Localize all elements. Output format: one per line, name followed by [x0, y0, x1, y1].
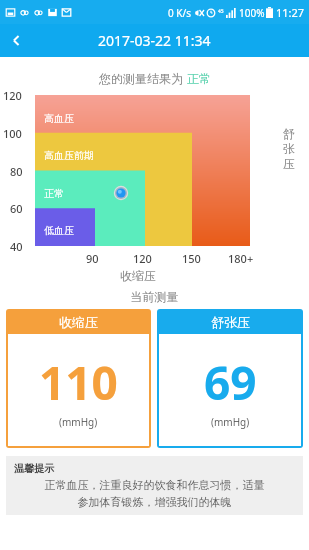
staticText: (mmHg) [59, 415, 98, 429]
staticText: 正常血压，注重良好的饮食和作息习惯，适量 参加体育锻炼，增强我们的体魄 [14, 478, 295, 509]
staticText: 90 [86, 251, 99, 266]
staticText: 2017-03-22 11:34 [98, 31, 211, 50]
staticText: 高血压前期 [44, 149, 94, 162]
button[interactable]: Back [0, 24, 33, 57]
staticText: 60 [10, 201, 23, 216]
staticText: 当前测量 [0, 289, 309, 304]
staticText: 张 [283, 141, 295, 156]
staticText: 正常 [44, 187, 64, 200]
staticText: 舒 [283, 126, 295, 141]
staticText: 0 K/s [168, 6, 192, 20]
staticText: 正常 [187, 71, 211, 86]
staticText: 100 [3, 126, 22, 141]
staticText: 120 [3, 88, 22, 103]
button[interactable]: 收缩压 [6, 309, 151, 448]
staticText: 舒张压 [211, 314, 250, 330]
staticText: 低血压 [44, 224, 74, 237]
staticText: 您的测量结果为 [99, 70, 187, 86]
staticText: 温馨提示 [14, 462, 54, 475]
staticText: ⁴⁵ [218, 7, 224, 18]
staticText: 收缩压 [120, 268, 156, 283]
staticText: 100% [239, 6, 265, 20]
staticText: 69 [204, 351, 257, 414]
staticText: (mmHg) [211, 415, 250, 429]
staticText: 110 [39, 351, 118, 414]
staticText: 120 [133, 251, 152, 266]
staticText: 80 [10, 164, 23, 179]
staticText: 高血压 [44, 112, 74, 125]
staticText: 收缩压 [59, 314, 98, 330]
staticText: 11:27 [276, 5, 305, 20]
staticText: 150 [182, 251, 201, 266]
staticText: 180+ [228, 251, 254, 266]
staticText: 压 [283, 156, 295, 171]
button[interactable]: 舒张压 [157, 309, 303, 448]
staticText: 40 [10, 239, 23, 254]
